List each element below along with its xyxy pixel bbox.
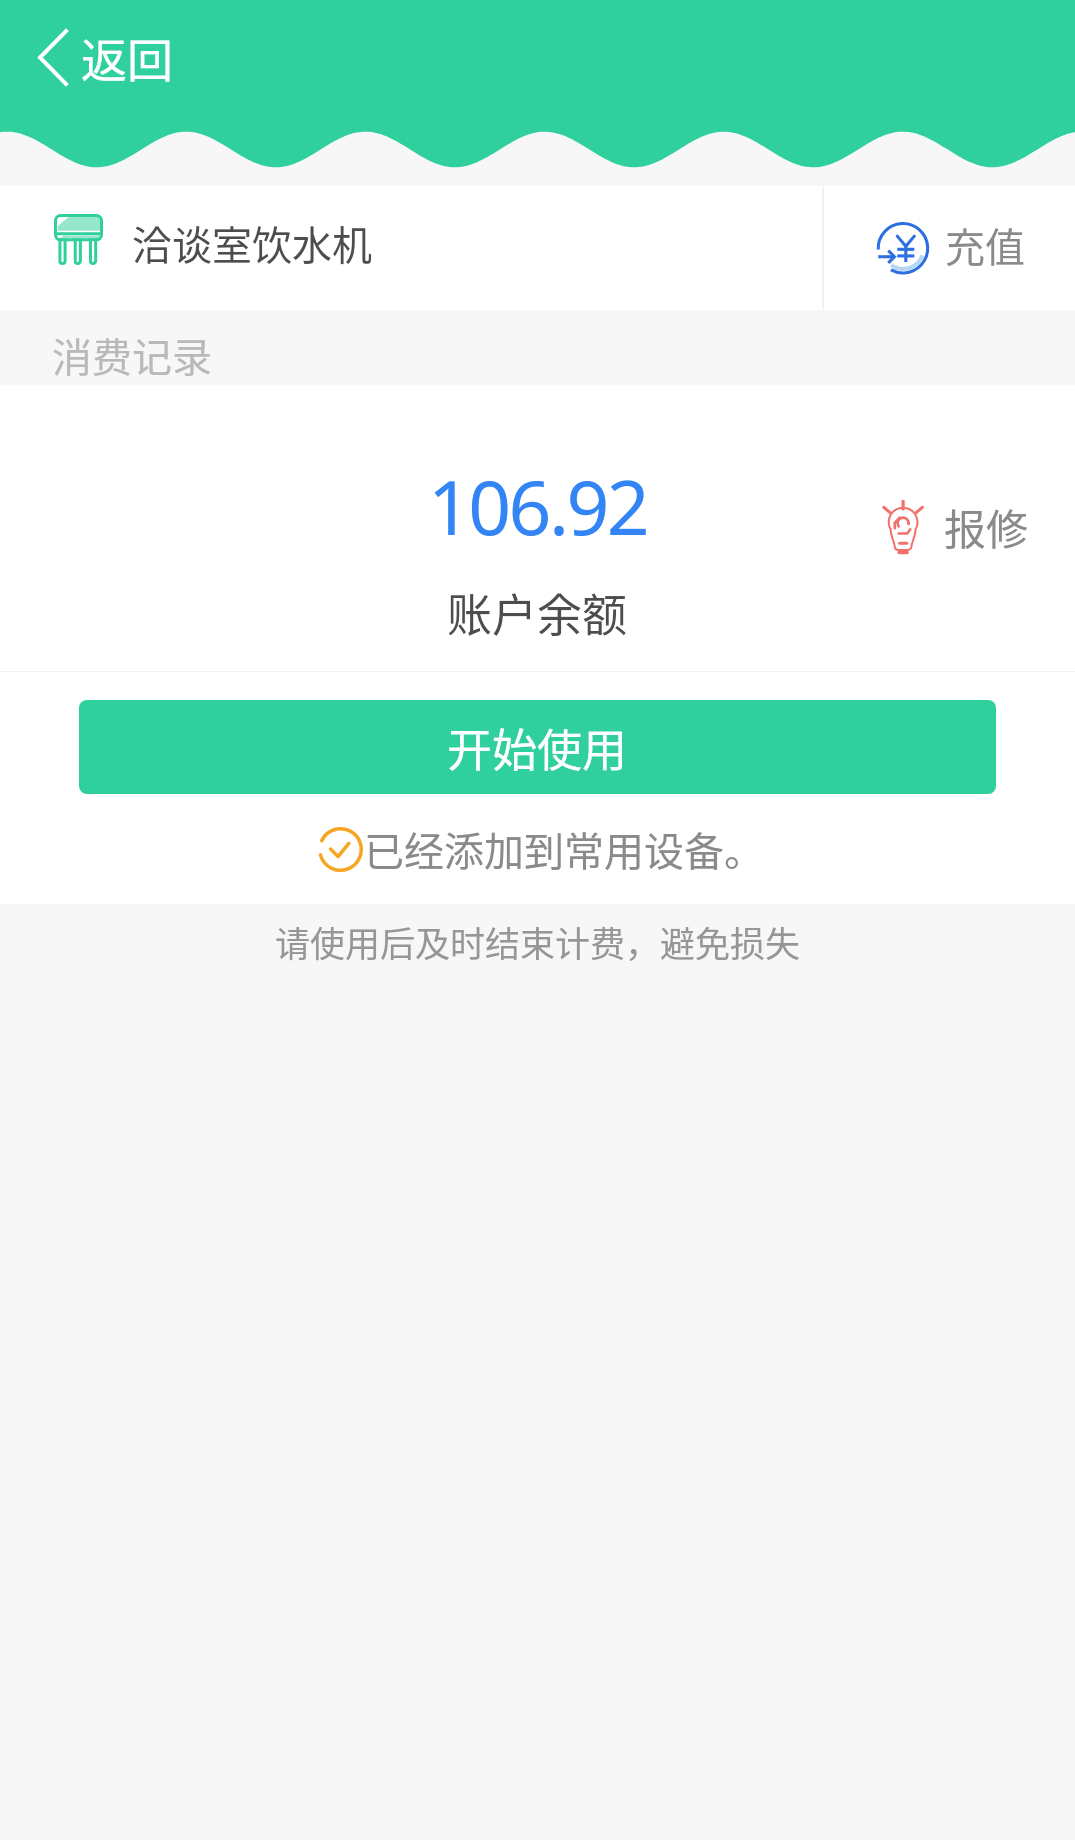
staticText: 请使用后及时结束计费，避免损失 [0,916,1075,967]
button[interactable]: 开始使用 [79,700,996,794]
button[interactable]: 洽谈室饮水机 [0,186,822,310]
button[interactable]: 充值 [824,186,1075,310]
button[interactable]: 消费记录 [0,310,1075,385]
other: 报修 [883,501,924,554]
other: 充值 [878,221,932,276]
button[interactable]: 已经添加到常用设备。 [318,820,764,878]
button[interactable]: 报修 [883,496,1029,558]
staticText: 账户余额 [447,580,628,645]
staticText: 洽谈室饮水机 [132,214,372,272]
button[interactable]: 返回 [24,10,187,105]
staticText: 充值 [945,216,1025,274]
staticText: 开始使用 [447,715,628,780]
staticText: 106.92 [428,455,648,557]
staticText: 返回 [81,24,173,91]
other: 返回 [38,29,68,86]
staticText: 消费记录 [52,326,212,384]
staticText: 报修 [944,496,1029,557]
staticText: 已经添加到常用设备。 [364,820,764,878]
